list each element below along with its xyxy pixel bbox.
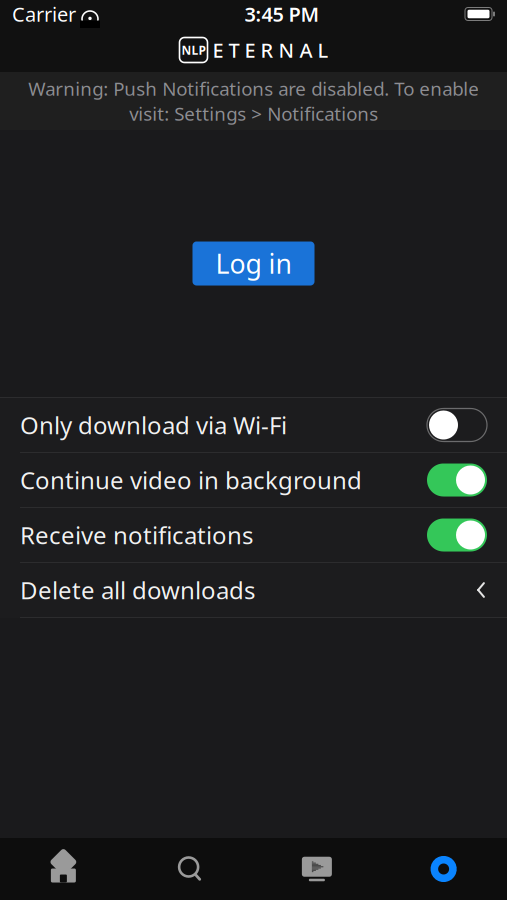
staticText: Receive notifications <box>20 519 253 551</box>
button[interactable]: Log in <box>192 241 314 285</box>
button[interactable]: Home <box>0 838 127 900</box>
staticText: Delete all downloads <box>20 574 255 606</box>
staticText: Log in <box>215 246 291 281</box>
button[interactable]: Only download via Wi-Fi <box>0 398 507 453</box>
staticText: Continue video in background <box>20 464 362 496</box>
staticText: Carrier <box>12 1 76 27</box>
staticText: Warning: Push Notifications are disabled… <box>28 76 479 126</box>
button[interactable]: Continue video in background <box>0 453 507 508</box>
button[interactable]: Settings <box>380 838 507 900</box>
staticText: NLP <box>181 42 205 58</box>
staticText: Only download via Wi-Fi <box>20 409 287 441</box>
staticText: E T E R N A L <box>212 37 328 63</box>
button[interactable]: Videos <box>253 838 380 900</box>
button[interactable]: Delete all downloads <box>0 563 507 618</box>
button[interactable]: Receive notifications <box>0 508 507 563</box>
button[interactable]: Search <box>127 838 254 900</box>
staticText: 3:45 PM <box>244 1 319 27</box>
